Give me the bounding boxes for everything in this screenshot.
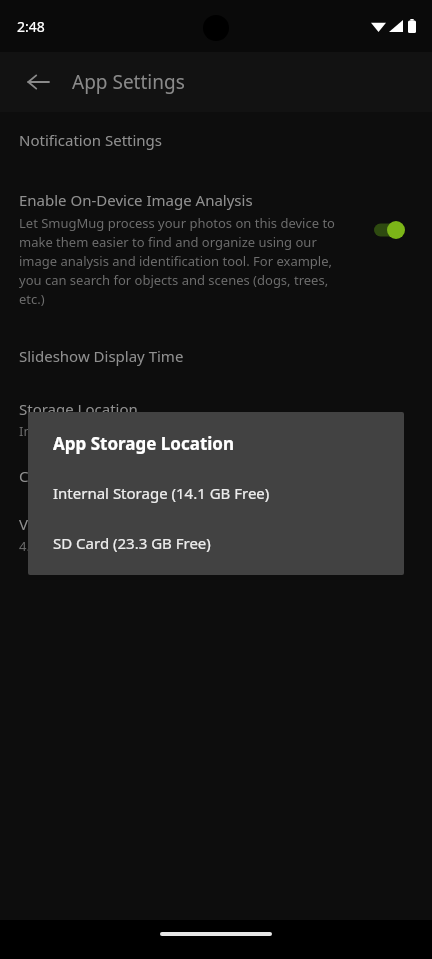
button[interactable]: Back: [14, 58, 62, 106]
staticText: Version: [19, 514, 72, 534]
button[interactable]: Slideshow Display Time: [0, 346, 432, 366]
staticText: Slideshow Display Time: [19, 346, 184, 366]
staticText: Internal Storage: [19, 422, 119, 440]
staticText: 2:48: [17, 17, 45, 36]
button[interactable]: Enable On-Device Image Analysis toggle: [372, 216, 414, 244]
staticText: 4.2.1: [19, 537, 49, 555]
staticText: Enable On-Device Image Analysis: [19, 190, 253, 210]
button[interactable]: Notification Settings: [0, 130, 432, 150]
staticText: Internal Storage (14.1 GB Free): [53, 483, 270, 503]
staticText: Clear Cache: [19, 466, 103, 486]
button[interactable]: Clear Cache: [0, 466, 432, 486]
staticText: SD Card (23.3 GB Free): [53, 533, 211, 553]
button[interactable]: Enable On-Device Image Analysis: [0, 190, 432, 308]
staticText: App Storage Location: [53, 432, 235, 455]
button[interactable]: SD Card (23.3 GB Free): [28, 529, 404, 557]
staticText: Storage Location: [19, 399, 138, 419]
staticText: Notification Settings: [19, 130, 163, 150]
staticText: App Settings: [72, 69, 185, 95]
staticText: Let SmugMug process your photos on this …: [19, 214, 342, 308]
button[interactable]: Internal Storage (14.1 GB Free): [28, 479, 404, 507]
button[interactable]: Storage Location: [0, 399, 432, 440]
